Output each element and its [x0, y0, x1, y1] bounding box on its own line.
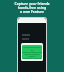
staticText: Capture your friends hands-free using a … [0, 1, 64, 14]
staticText: Lorem ipsum dolor sit amet consectetur e… [22, 46, 42, 59]
